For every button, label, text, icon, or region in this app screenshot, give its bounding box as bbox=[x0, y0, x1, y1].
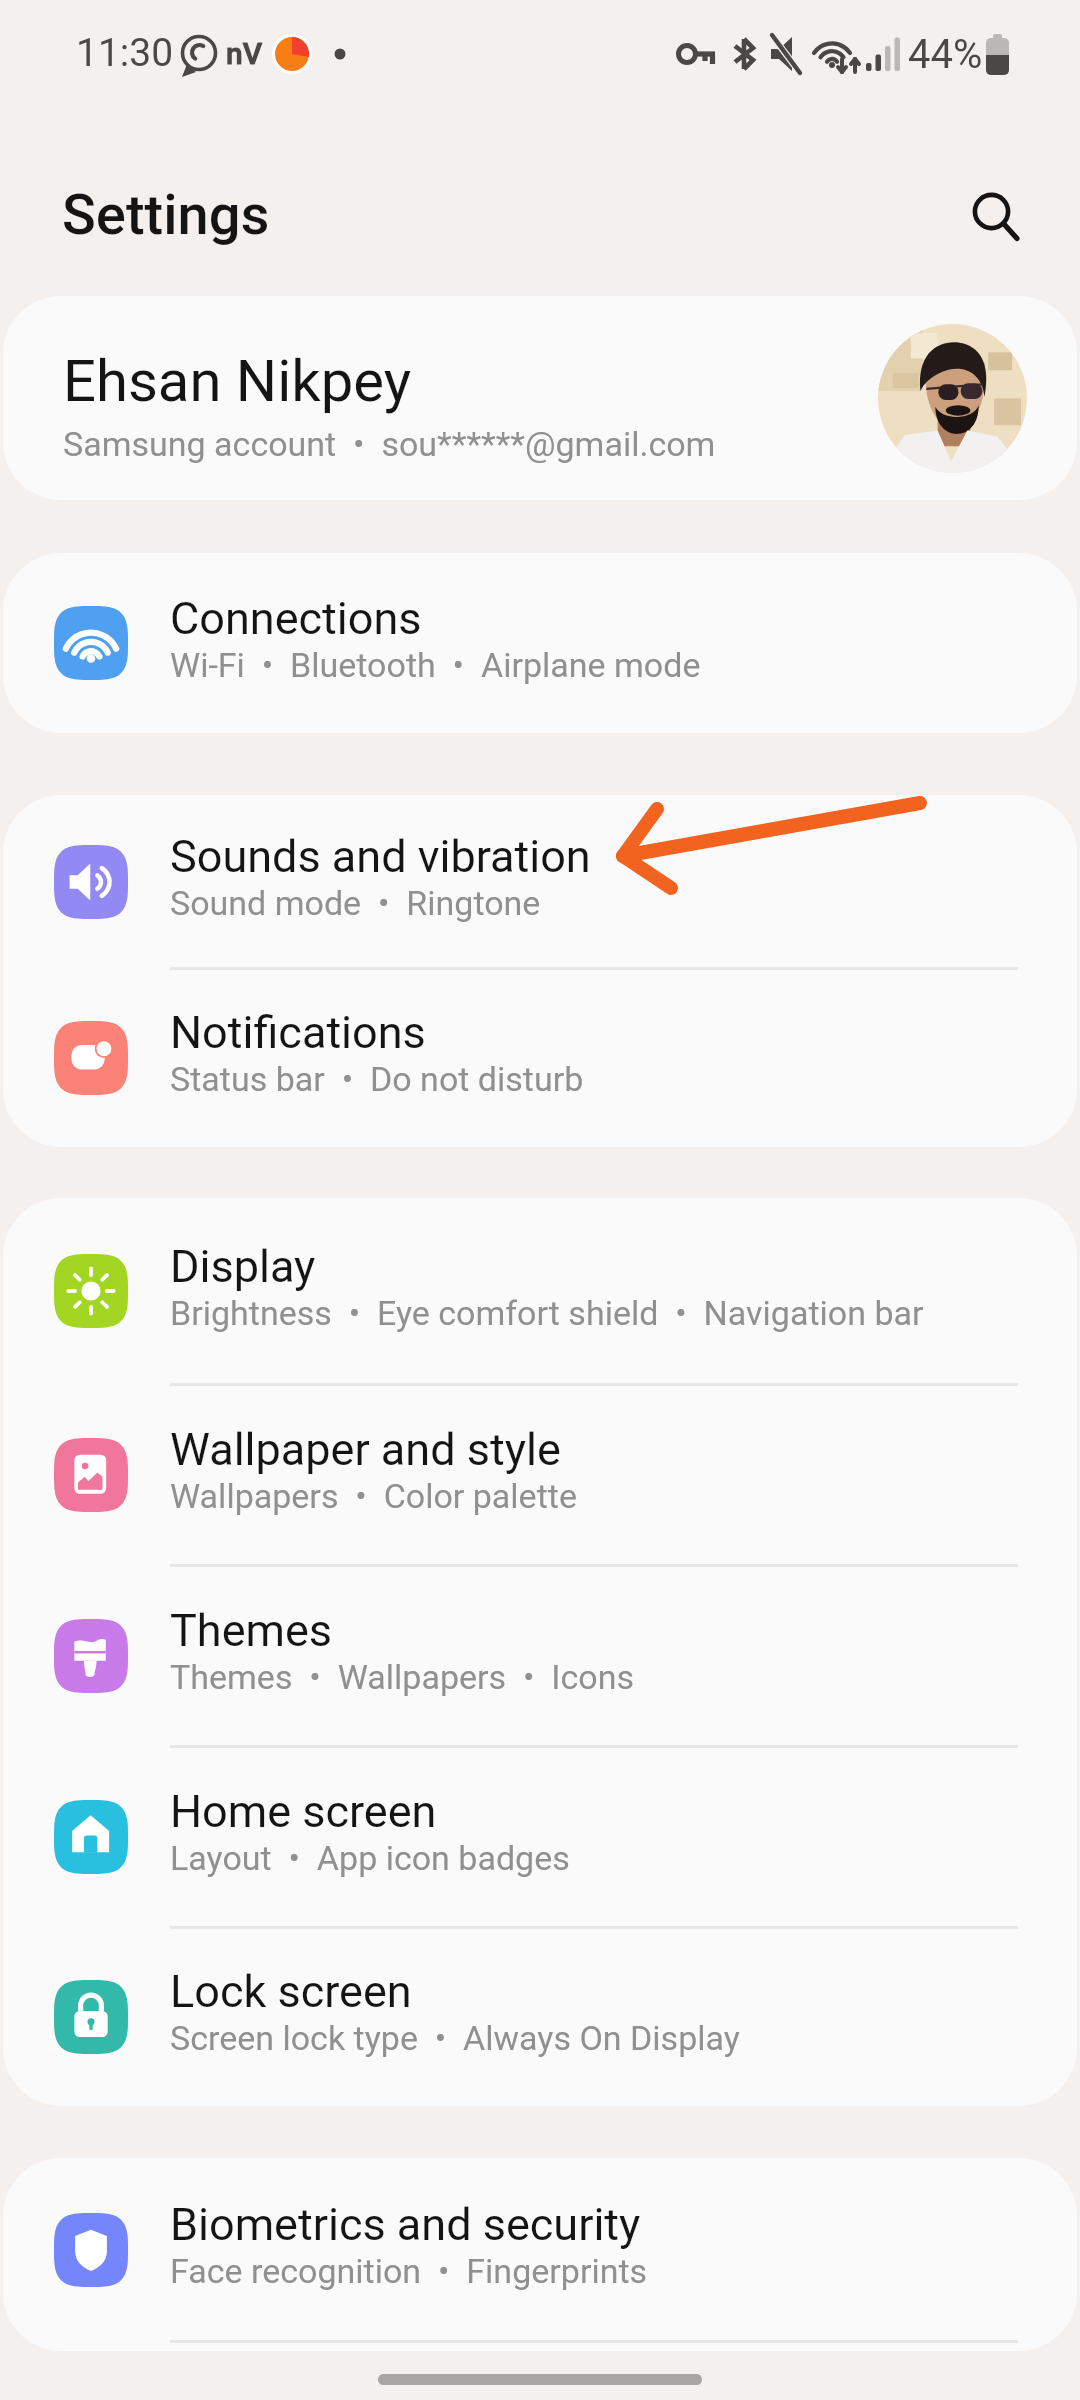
button[interactable]: Ehsan Nikpey bbox=[3, 296, 1077, 500]
button[interactable]: Home screen bbox=[3, 1746, 1077, 1927]
button[interactable]: Biometrics and security bbox=[3, 2158, 1077, 2341]
staticText: Wallpaper and style bbox=[170, 1423, 561, 1476]
staticText: Brightness • Eye comfort shield • Naviga… bbox=[170, 1293, 924, 1333]
staticText: Face recognition • Fingerprints bbox=[170, 2251, 648, 2291]
staticText: Lock screen bbox=[170, 1965, 412, 2018]
staticText: Wi-Fi • Bluetooth • Airplane mode bbox=[170, 645, 701, 685]
button[interactable]: Wallpaper and style bbox=[3, 1384, 1077, 1565]
button[interactable]: Lock screen bbox=[3, 1927, 1077, 2106]
staticText: 44% bbox=[908, 31, 983, 78]
staticText: Settings bbox=[62, 182, 270, 248]
button[interactable]: Themes bbox=[3, 1565, 1077, 1746]
staticText: Samsung account • sou******@gmail.com bbox=[63, 424, 716, 464]
staticText: Sound mode • Ringtone bbox=[170, 883, 541, 923]
button[interactable]: Search bbox=[946, 166, 1038, 258]
button[interactable]: Display bbox=[3, 1198, 1077, 1384]
staticText: Themes bbox=[170, 1604, 333, 1657]
staticText: Screen lock type • Always On Display bbox=[170, 2018, 740, 2058]
staticText: Wallpapers • Color palette bbox=[170, 1476, 577, 1516]
staticText: Biometrics and security bbox=[170, 2198, 641, 2251]
button[interactable]: Notifications bbox=[3, 968, 1077, 1147]
staticText: Home screen bbox=[170, 1785, 437, 1838]
staticText: Themes • Wallpapers • Icons bbox=[170, 1657, 635, 1697]
staticText: Notifications bbox=[170, 1006, 426, 1059]
staticText: Ehsan Nikpey bbox=[63, 347, 412, 415]
button[interactable]: Sounds and vibration bbox=[3, 795, 1077, 968]
staticText: nV bbox=[226, 36, 263, 71]
staticText: Display bbox=[170, 1240, 316, 1293]
staticText: Status bar • Do not disturb bbox=[170, 1059, 584, 1099]
staticText: Connections bbox=[170, 592, 422, 645]
staticText: 11:30 bbox=[76, 30, 174, 76]
staticText: Layout • App icon badges bbox=[170, 1838, 570, 1878]
staticText: Sounds and vibration bbox=[170, 830, 591, 883]
button[interactable]: Connections bbox=[3, 553, 1077, 733]
